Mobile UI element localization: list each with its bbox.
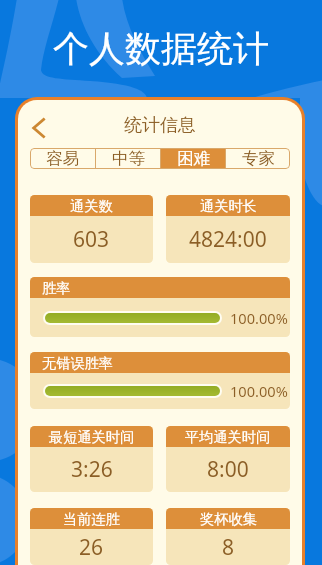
staticText: 中等 xyxy=(112,148,145,169)
button[interactable]: 通关数 xyxy=(30,195,153,263)
staticText: 个人数据统计 xyxy=(0,26,322,71)
staticText: 容易 xyxy=(46,148,79,169)
button[interactable]: Back xyxy=(23,113,53,143)
staticText: 专家 xyxy=(242,148,275,169)
staticText: 困难 xyxy=(177,148,210,169)
staticText: 胜率 xyxy=(42,279,71,297)
button[interactable]: 奖杯收集 xyxy=(166,508,290,565)
staticText: 4824:00 xyxy=(189,225,267,254)
staticText: 无错误胜率 xyxy=(42,354,113,372)
staticText: 当前连胜 xyxy=(63,510,120,528)
staticText: 8 xyxy=(222,533,235,562)
staticText: 8:00 xyxy=(207,455,249,484)
staticText: 通关时长 xyxy=(200,197,257,215)
button[interactable]: 通关时长 xyxy=(166,195,290,263)
staticText: 26 xyxy=(79,533,104,562)
button[interactable]: 无错误胜率 xyxy=(30,352,290,409)
button[interactable]: 困难 xyxy=(161,148,225,169)
button[interactable]: 专家 xyxy=(226,148,290,169)
button[interactable]: 容易 xyxy=(30,148,95,169)
staticText: 奖杯收集 xyxy=(200,510,257,528)
button[interactable]: 当前连胜 xyxy=(30,508,153,565)
button[interactable]: 最短通关时间 xyxy=(30,426,153,492)
staticText: 100.00% xyxy=(230,308,288,328)
staticText: 603 xyxy=(73,225,110,254)
staticText: 平均通关时间 xyxy=(185,428,271,446)
staticText: 统计信息 xyxy=(124,114,196,137)
button[interactable]: 中等 xyxy=(96,148,160,169)
staticText: 3:26 xyxy=(71,455,113,484)
staticText: 通关数 xyxy=(70,197,113,215)
staticText: 100.00% xyxy=(230,381,288,401)
button[interactable]: 胜率 xyxy=(30,277,290,337)
staticText: 最短通关时间 xyxy=(49,428,135,446)
button[interactable]: 平均通关时间 xyxy=(166,426,290,492)
